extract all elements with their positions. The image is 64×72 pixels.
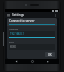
staticText: OK	[48, 53, 52, 56]
button[interactable]: Home	[29, 59, 36, 64]
staticText: Address	[9, 27, 19, 30]
button[interactable]	[7, 36, 57, 41]
button[interactable]	[7, 25, 57, 30]
button[interactable]: 8080	[9, 44, 55, 50]
button[interactable]: Menu	[5, 12, 59, 18]
button[interactable]: OK	[45, 52, 55, 57]
button[interactable]: Back	[13, 59, 20, 64]
staticText: Port	[9, 40, 14, 43]
button[interactable]: More options	[54, 14, 57, 17]
button[interactable]: Menu	[7, 14, 10, 17]
button[interactable]	[7, 51, 57, 56]
button[interactable]	[7, 30, 57, 35]
button[interactable]	[7, 41, 57, 46]
staticText: Connect to server	[9, 19, 35, 23]
staticText: 192.168.0.1	[10, 32, 24, 36]
button[interactable]: 192.168.0.1	[9, 31, 55, 37]
staticText: Settings	[12, 13, 25, 17]
button[interactable]	[7, 20, 57, 25]
button[interactable]	[7, 56, 57, 57]
button[interactable]: Recent apps	[44, 59, 51, 64]
staticText: 8080	[10, 45, 16, 49]
button[interactable]	[7, 46, 57, 51]
